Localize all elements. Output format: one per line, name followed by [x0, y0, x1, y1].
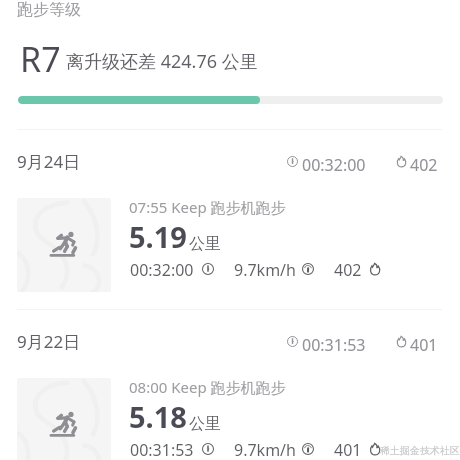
- staticText: R7: [20, 36, 61, 82]
- button[interactable]: [17, 378, 111, 460]
- staticText: 5.18: [129, 397, 187, 436]
- staticText: 9月22日: [17, 330, 81, 353]
- staticText: 401: [410, 334, 438, 356]
- staticText: 07:55 Keep 跑步机跑步: [129, 197, 286, 217]
- staticText: 402: [334, 259, 362, 281]
- staticText: 00:31:53: [130, 439, 194, 460]
- staticText: 5.19: [129, 217, 187, 256]
- staticText: 离升级还差 424.76 公里: [66, 49, 258, 74]
- staticText: 9.7km/h: [234, 259, 296, 281]
- staticText: 00:32:00: [302, 154, 366, 176]
- staticText: 稀土掘金技术社区: [380, 444, 460, 457]
- button[interactable]: 9月24日: [17, 152, 442, 180]
- staticText: 9月24日: [17, 150, 81, 173]
- staticText: 公里: [189, 414, 221, 434]
- staticText: 00:31:53: [302, 334, 366, 356]
- staticText: 08:00 Keep 跑步机跑步: [129, 377, 286, 397]
- staticText: 401: [334, 439, 362, 460]
- staticText: 9.7km/h: [234, 439, 296, 460]
- button[interactable]: 9月22日: [17, 332, 442, 360]
- staticText: 402: [410, 154, 438, 176]
- staticText: 公里: [189, 234, 221, 254]
- button[interactable]: [17, 198, 111, 292]
- staticText: 跑步等级: [17, 0, 81, 20]
- staticText: 00:32:00: [130, 259, 194, 281]
